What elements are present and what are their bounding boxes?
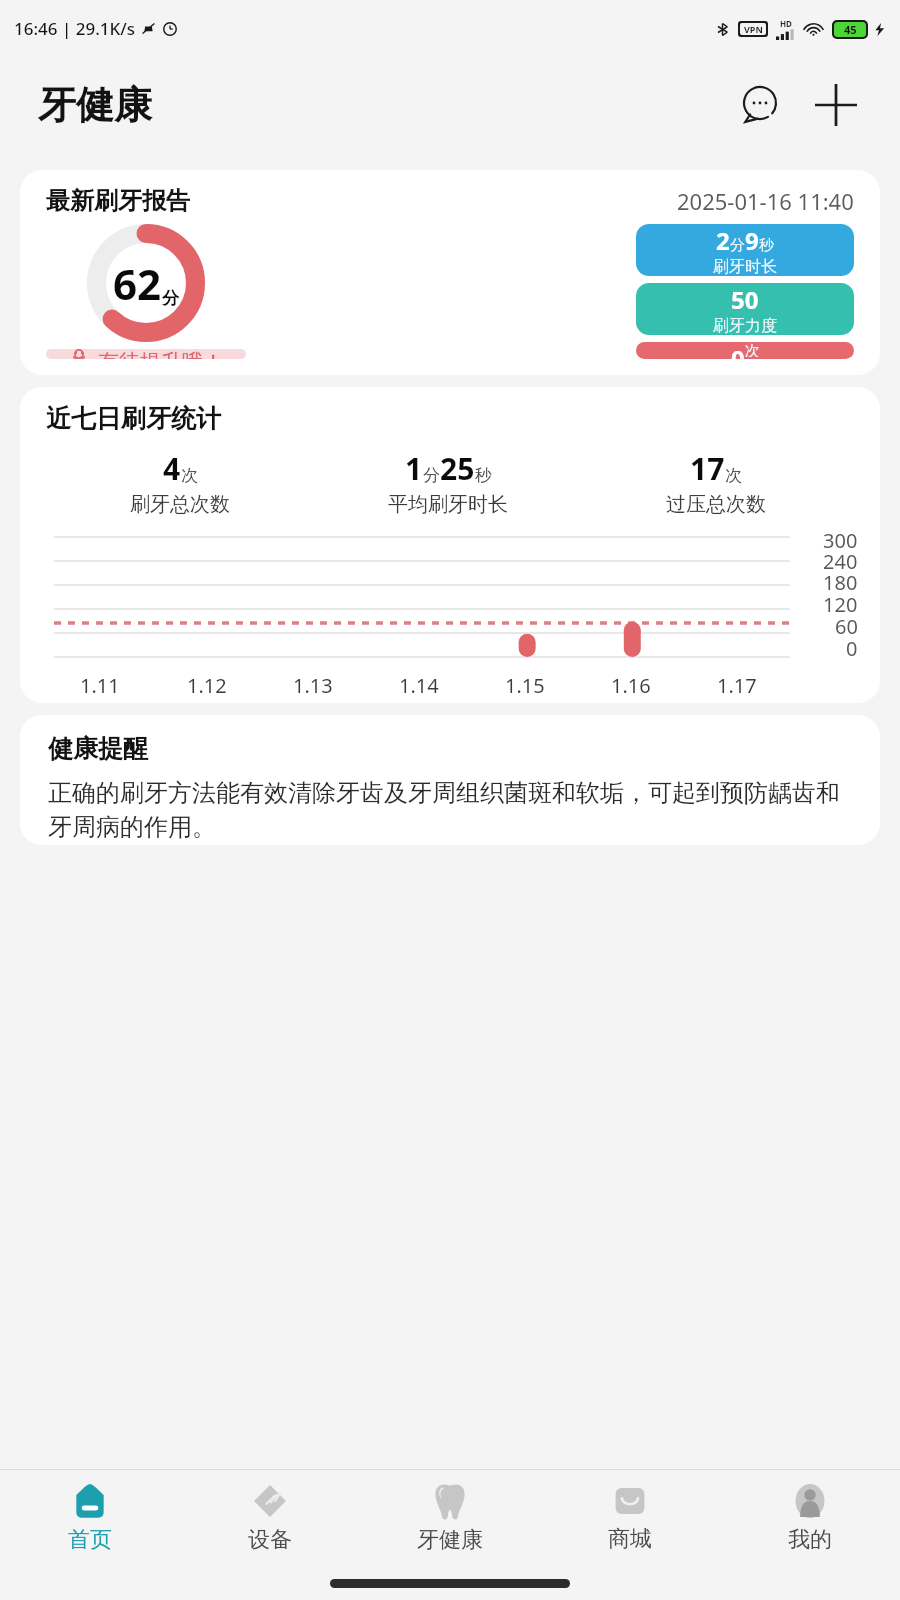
staticText: 2025-01-16 11:40 [677, 186, 854, 216]
button[interactable]: 健康提醒 [20, 715, 880, 845]
button[interactable]: 商城 [540, 1470, 720, 1566]
staticText: 120 [823, 591, 858, 613]
staticText: 次 [725, 465, 742, 486]
staticText: 秒 [759, 236, 774, 255]
staticText: 分 [423, 465, 440, 486]
button[interactable]: 最新刷牙报告 [20, 170, 880, 375]
staticText: 牙健康 [38, 81, 152, 129]
button[interactable]: 牙健康 [360, 1470, 540, 1566]
staticText: 牙健康 [417, 1526, 483, 1554]
button[interactable]: 首页 [0, 1470, 180, 1566]
staticText: 最新刷牙报告 [46, 186, 190, 216]
staticText: 设备 [248, 1526, 292, 1554]
staticText: 分 [162, 288, 179, 309]
staticText: 1.11 [80, 672, 120, 699]
button[interactable]: 我的 [720, 1470, 900, 1566]
staticText: 0 [846, 635, 858, 657]
staticText: 我的 [788, 1526, 832, 1554]
staticText: 有待提升哦！ [98, 349, 224, 359]
staticText: 180 [823, 569, 858, 591]
staticText: 0 [731, 342, 745, 359]
staticText: 健康提醒 [48, 733, 148, 764]
button[interactable]: 有待提升哦！ [46, 349, 246, 359]
button[interactable]: 设备 [180, 1470, 360, 1566]
staticText: VPN [744, 23, 763, 35]
staticText: 近七日刷牙统计 [46, 403, 221, 434]
staticText: HD [780, 18, 792, 29]
staticText: 1.14 [399, 672, 439, 699]
staticText: 次 [181, 465, 198, 486]
button[interactable]: 50 [636, 283, 854, 335]
staticText: 4 [163, 448, 181, 489]
staticText: 240 [823, 548, 858, 569]
button[interactable]: 近七日刷牙统计 [20, 387, 880, 703]
staticText: 秒 [475, 465, 492, 486]
staticText: 1.17 [717, 672, 757, 699]
staticText: 16:46 | 29.1K/s [14, 17, 136, 40]
staticText: 刷牙时长 [713, 257, 777, 276]
staticText: 刷牙总次数 [130, 492, 230, 517]
staticText: 次 [745, 342, 760, 357]
staticText: 正确的刷牙方法能有效清除牙齿及牙周组织菌斑和软垢，可起到预防龋齿和牙周病的作用。 [48, 778, 856, 843]
staticText: 60 [835, 613, 858, 635]
staticText: 1.16 [611, 672, 651, 699]
staticText: 62 [113, 255, 162, 312]
staticText: 1 [405, 448, 423, 489]
staticText: 45 [844, 22, 857, 37]
button[interactable]: Messages [734, 79, 786, 131]
staticText: 刷牙力度 [713, 316, 777, 335]
staticText: 25 [440, 448, 475, 489]
staticText: 平均刷牙时长 [388, 492, 508, 517]
staticText: 1.12 [187, 672, 227, 699]
button[interactable]: 2 [636, 224, 854, 276]
button[interactable]: 0 [636, 342, 854, 359]
staticText: 50 [731, 283, 759, 316]
staticText: 首页 [68, 1526, 112, 1554]
staticText: 1.15 [505, 672, 545, 699]
staticText: 商城 [608, 1525, 652, 1553]
staticText: 过压总次数 [666, 492, 766, 517]
staticText: 1.13 [293, 672, 333, 699]
staticText: 2 [716, 224, 730, 257]
button[interactable]: Add [808, 77, 864, 133]
staticText: 分 [730, 236, 745, 255]
staticText: 17 [690, 448, 725, 489]
staticText: 9 [745, 224, 759, 257]
staticText: 300 [823, 527, 858, 548]
